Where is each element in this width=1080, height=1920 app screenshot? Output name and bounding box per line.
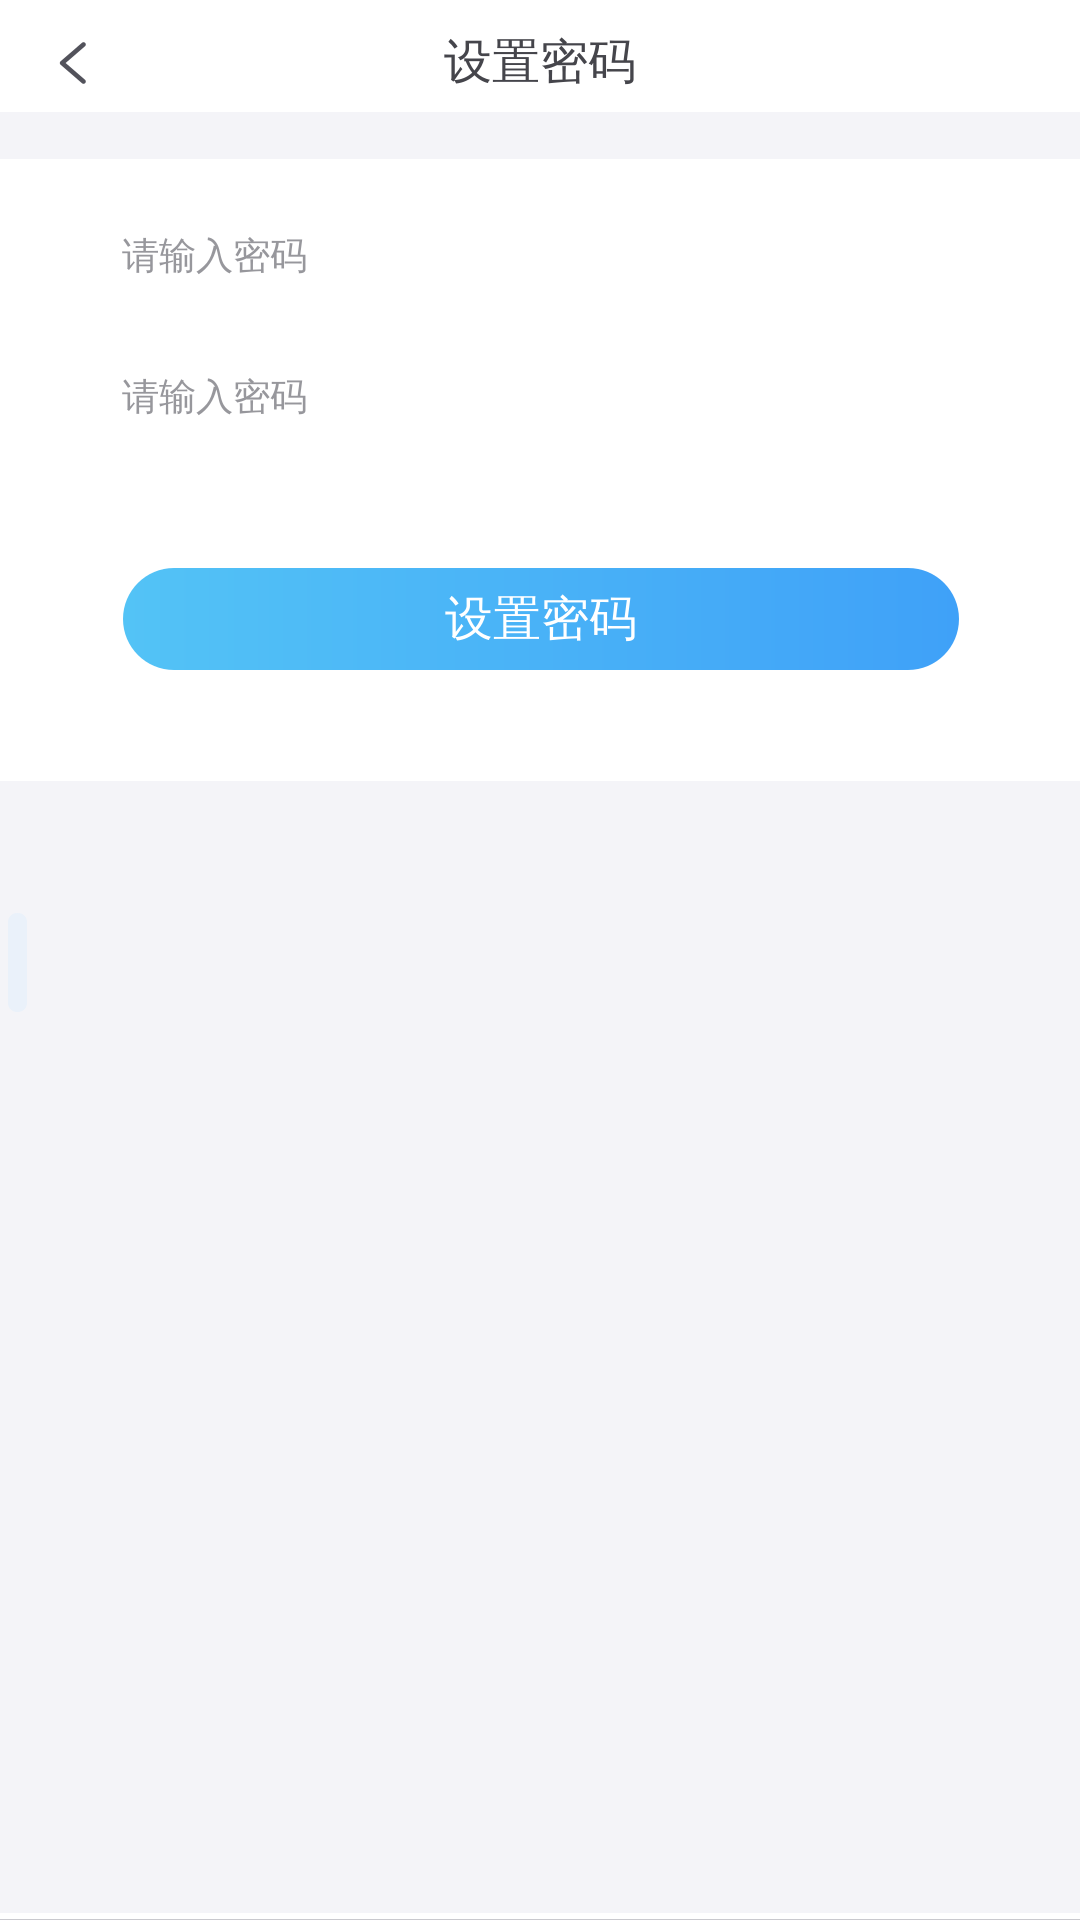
button[interactable]: 设置密码	[123, 568, 959, 670]
button[interactable]: 请输入密码	[0, 342, 1080, 452]
staticText: 设置密码	[445, 589, 637, 648]
staticText: 设置密码	[444, 32, 636, 91]
button[interactable]: Back	[0, 8, 148, 112]
staticText: 请输入密码	[122, 233, 307, 279]
button[interactable]: 请输入密码	[0, 201, 1080, 311]
staticText: 请输入密码	[122, 374, 307, 420]
